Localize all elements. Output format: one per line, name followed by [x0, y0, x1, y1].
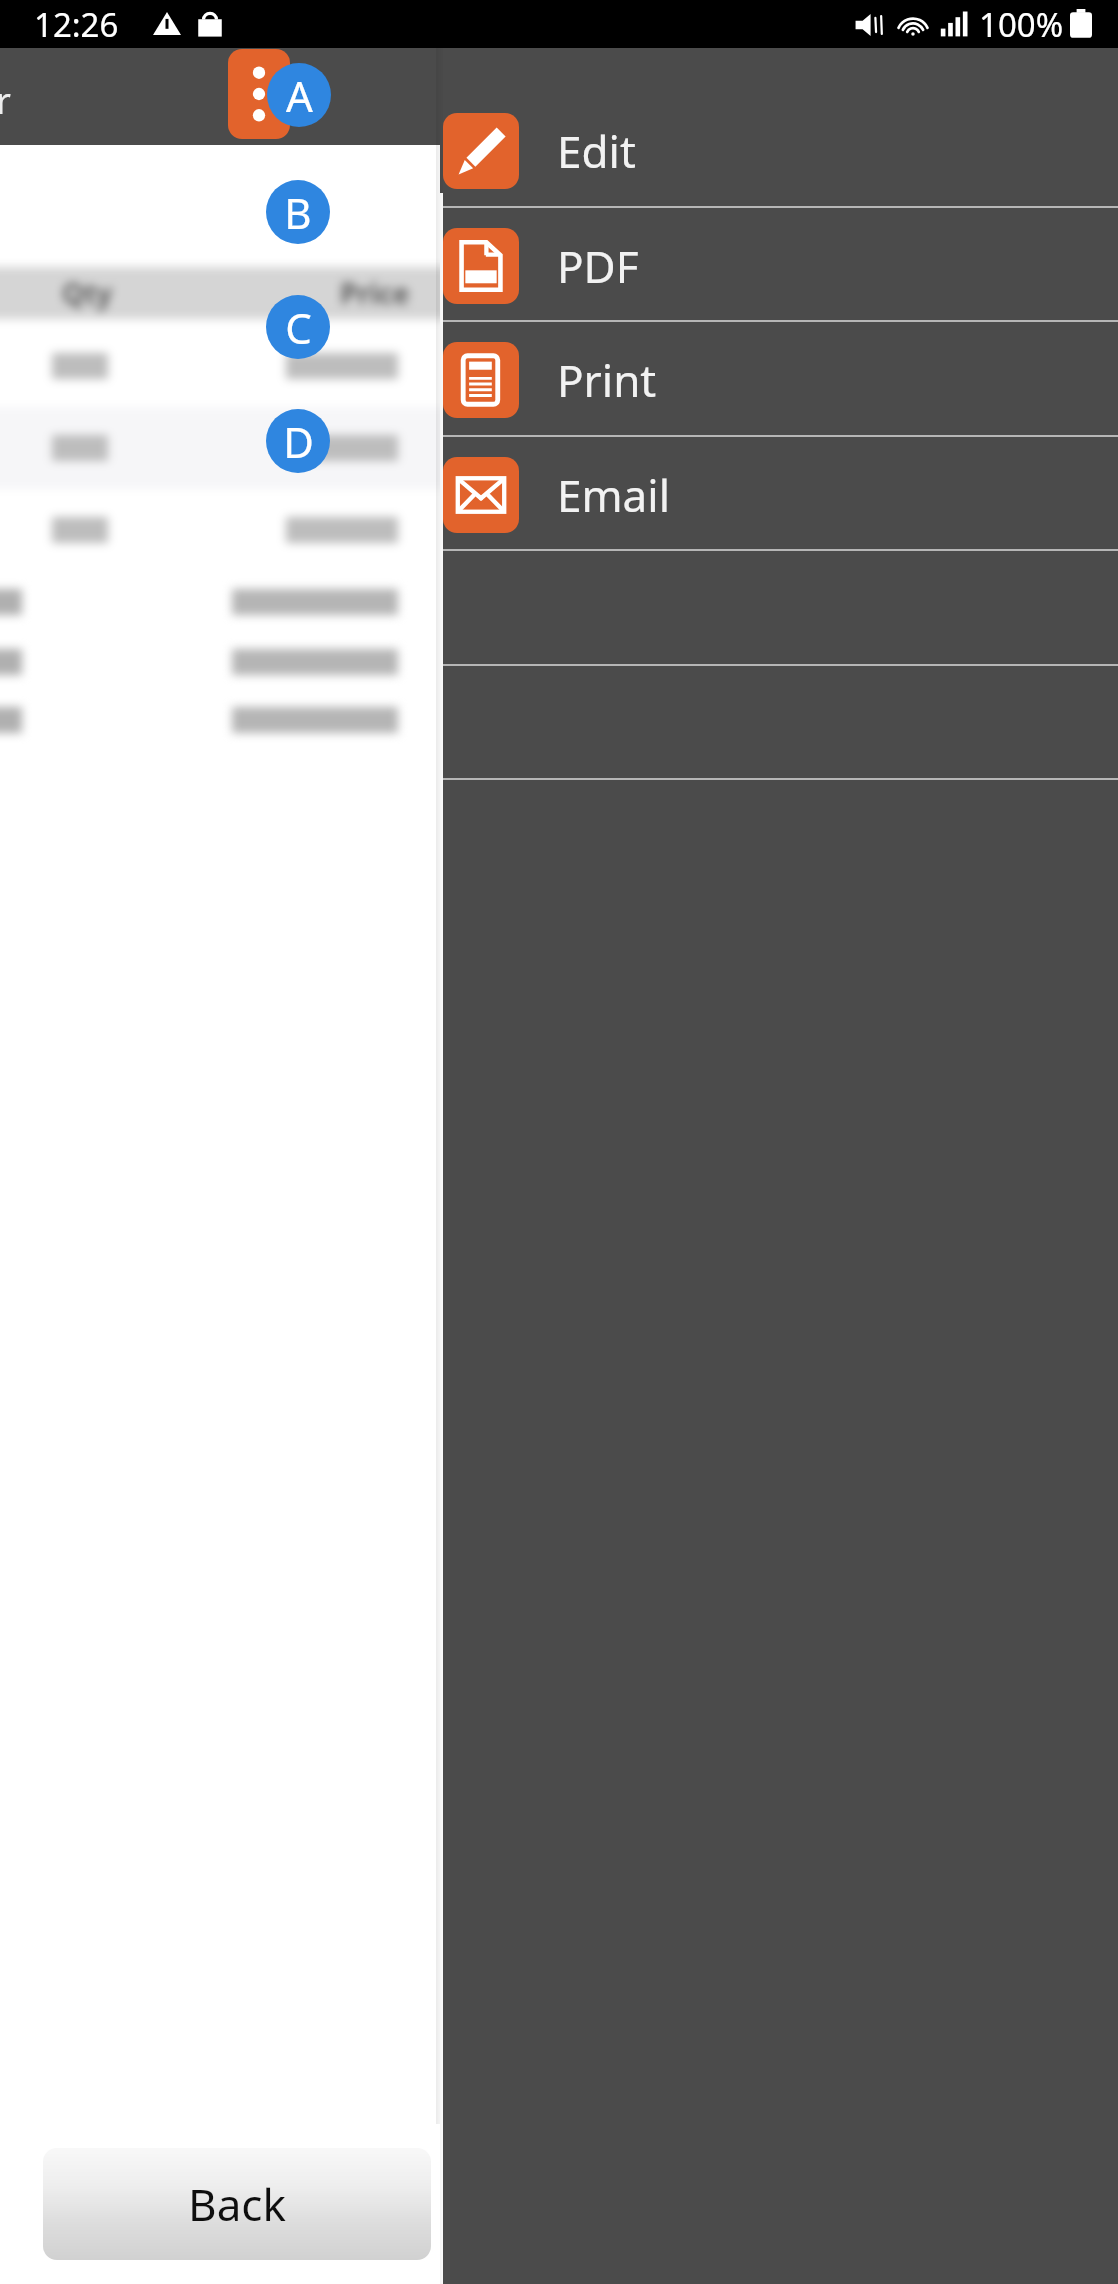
staticText: Back [188, 2174, 286, 2234]
staticText: Print [557, 350, 657, 410]
staticText: C [285, 299, 312, 356]
button[interactable]: Back [43, 2148, 431, 2260]
staticText: Qty [62, 274, 113, 312]
staticText: PDF [557, 236, 639, 296]
staticText: A [286, 67, 313, 124]
staticText: 100% [979, 2, 1064, 47]
staticText: Price [340, 274, 410, 312]
button[interactable]: PDF [443, 208, 1118, 323]
button[interactable]: Email [443, 437, 1118, 552]
staticText: 12:26 [34, 2, 119, 47]
button[interactable]: Print [443, 322, 1118, 437]
staticText: D [283, 413, 314, 470]
staticText: r [0, 76, 11, 125]
button[interactable]: More options [228, 49, 290, 139]
staticText: Edit [557, 121, 636, 181]
staticText: B [284, 184, 312, 241]
staticText: Email [557, 465, 670, 525]
button[interactable]: Edit [443, 93, 1118, 208]
